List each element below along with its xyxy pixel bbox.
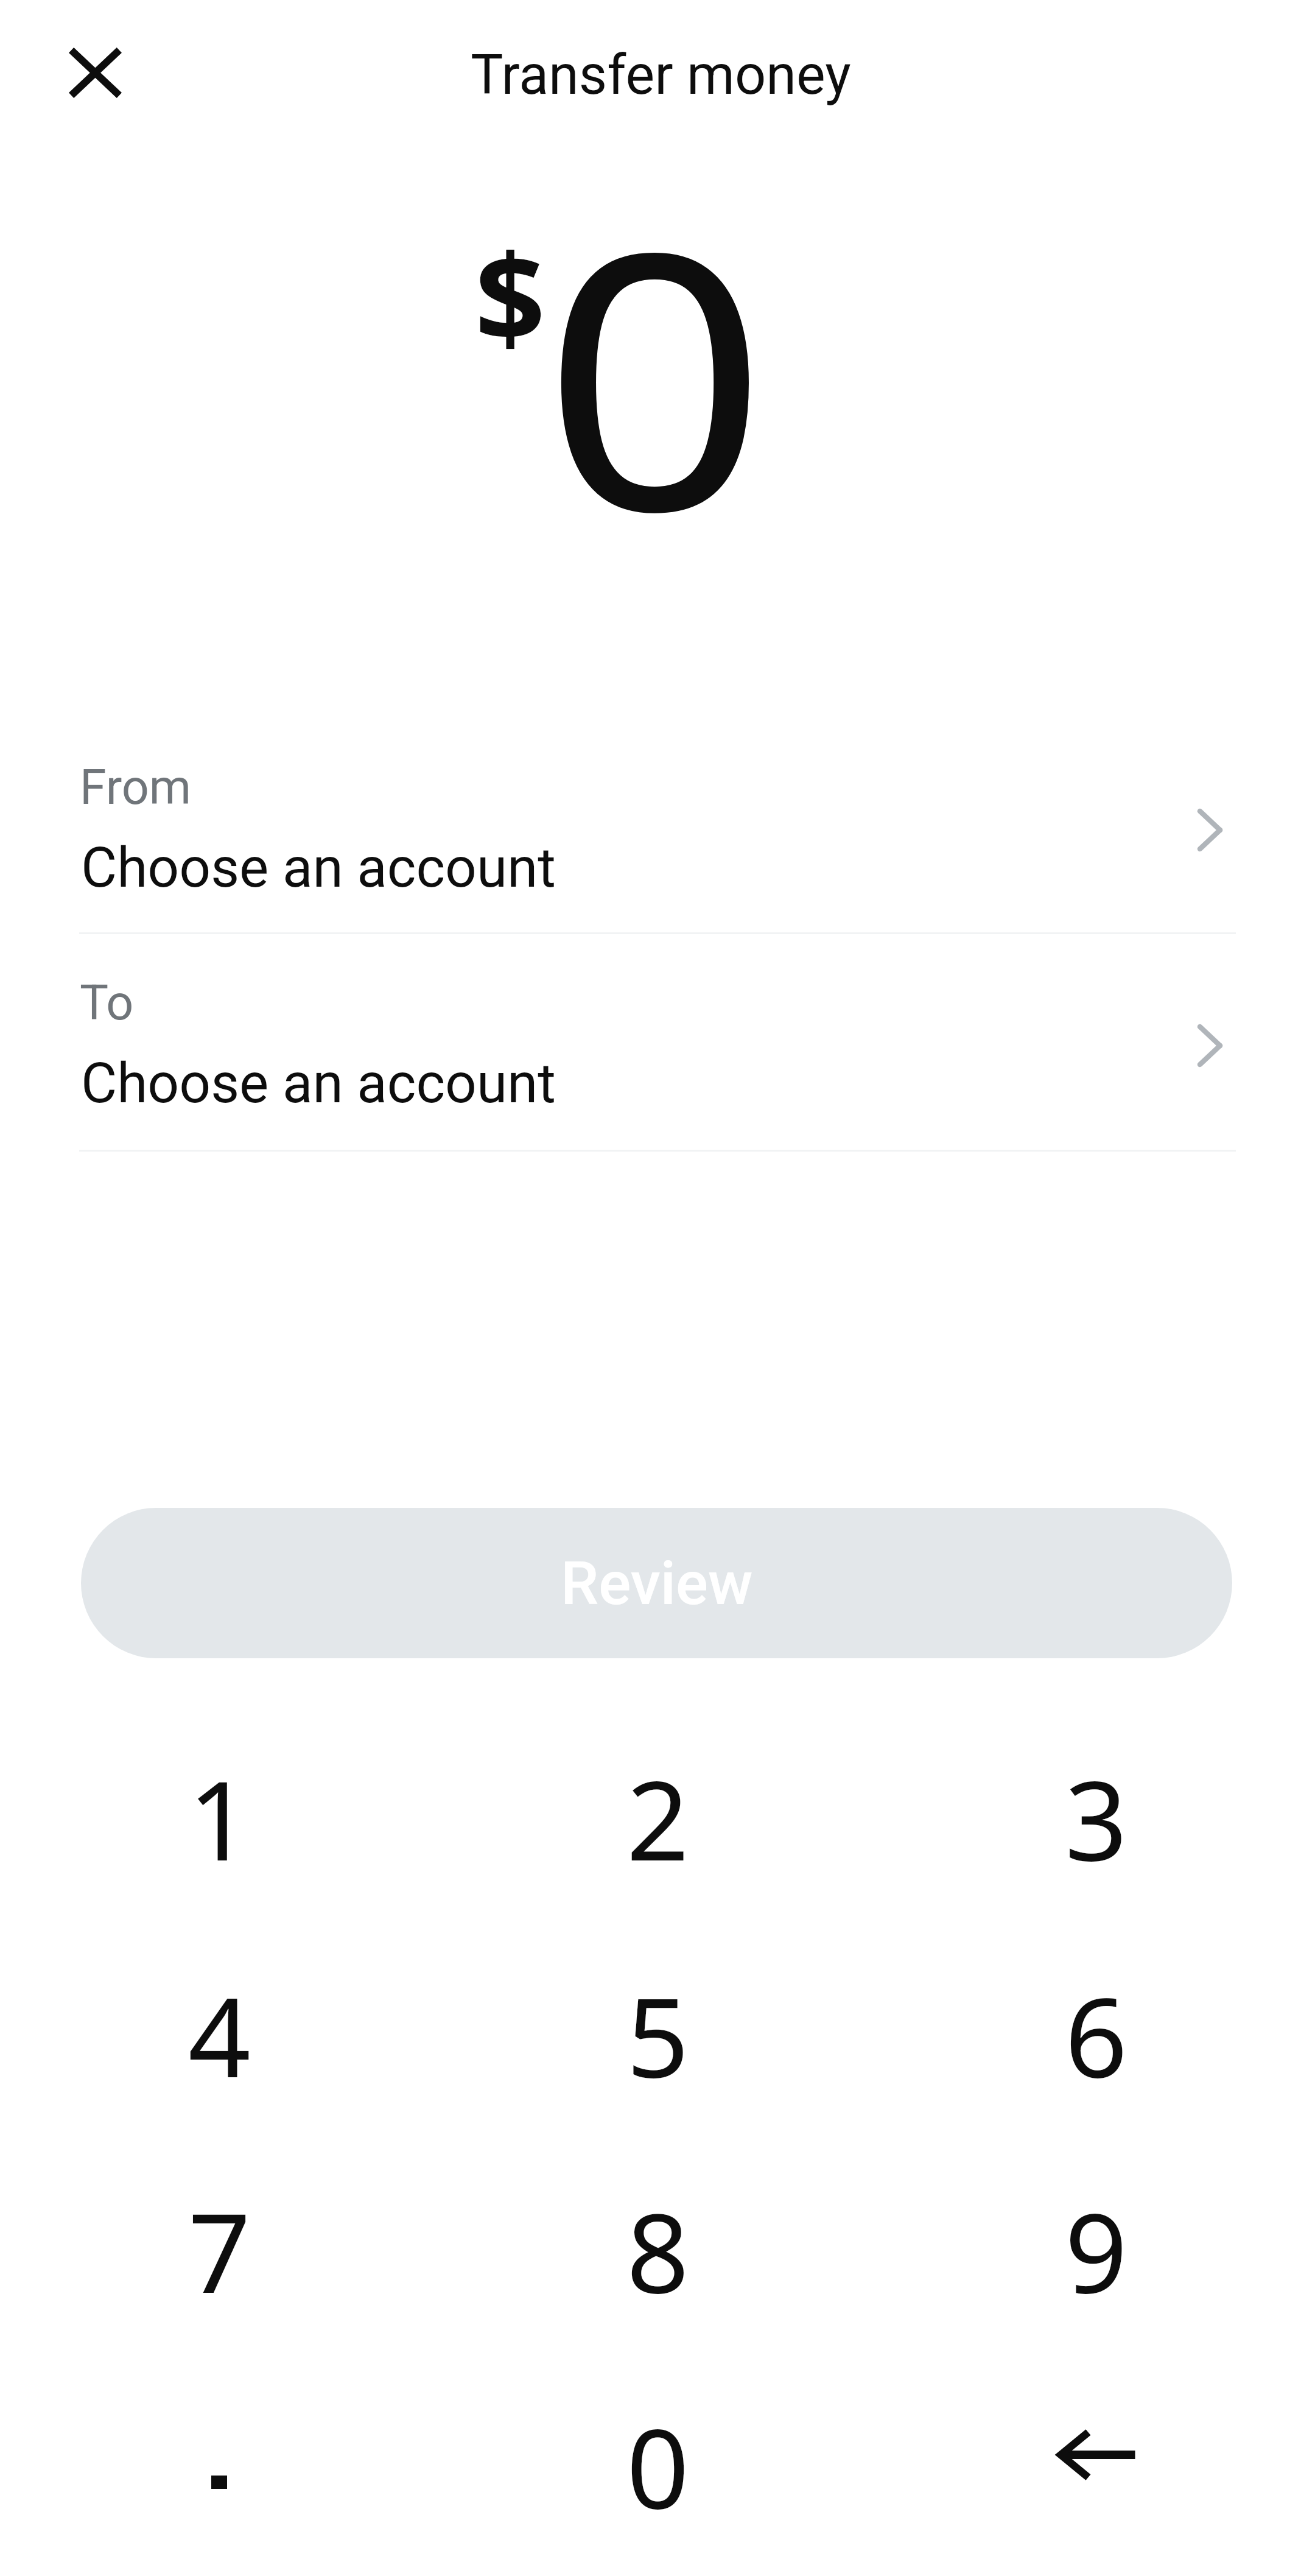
staticText: 3 xyxy=(1065,1744,1127,1893)
staticText: 9 xyxy=(1065,2176,1127,2325)
button[interactable]: From xyxy=(0,749,1315,932)
staticText: $ xyxy=(475,213,546,378)
staticText: Choose an account xyxy=(81,1051,556,1116)
staticText: 0 xyxy=(626,2391,689,2541)
staticText: 2 xyxy=(626,1744,689,1893)
staticText: To xyxy=(80,975,134,1032)
button[interactable]: 4 xyxy=(0,1927,438,2142)
button[interactable]: 5 xyxy=(438,1927,877,2142)
button[interactable]: 3 xyxy=(877,1710,1315,1926)
button[interactable]: 0 xyxy=(438,2358,877,2574)
button[interactable]: 1 xyxy=(0,1710,438,1926)
button[interactable]: 8 xyxy=(438,2142,877,2358)
button[interactable]: 6 xyxy=(877,1927,1315,2142)
staticText: Transfer money xyxy=(471,43,851,107)
staticText: 1 xyxy=(188,1744,251,1893)
staticText: 6 xyxy=(1065,1960,1127,2110)
staticText: 0 xyxy=(542,131,768,614)
staticText: 8 xyxy=(626,2176,689,2325)
staticText: Choose an account xyxy=(81,836,556,901)
staticText: From xyxy=(80,759,191,816)
button[interactable]: To xyxy=(0,965,1315,1147)
button[interactable]: 9 xyxy=(877,2142,1315,2358)
button[interactable]: Decimal point xyxy=(0,2358,438,2574)
button[interactable]: Backspace xyxy=(877,2358,1315,2574)
staticText: 7 xyxy=(188,2176,251,2325)
staticText: 4 xyxy=(188,1960,251,2110)
button[interactable]: 2 xyxy=(438,1710,877,1926)
staticText: Review xyxy=(561,1548,753,1619)
button[interactable]: 7 xyxy=(0,2142,438,2358)
button[interactable]: Close xyxy=(52,30,138,115)
button[interactable]: Review xyxy=(81,1508,1232,1658)
staticText: 5 xyxy=(626,1960,689,2110)
